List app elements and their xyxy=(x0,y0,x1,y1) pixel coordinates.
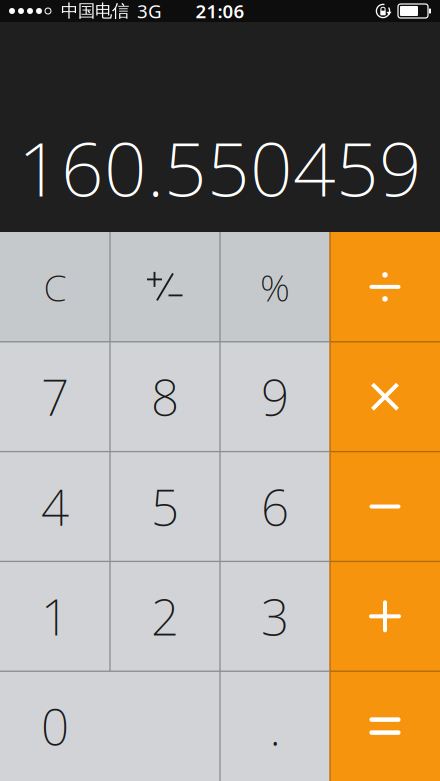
button[interactable]: 6 xyxy=(220,452,330,561)
staticText: % xyxy=(260,262,290,312)
button[interactable]: % xyxy=(220,232,330,342)
staticText: 3G xyxy=(137,0,162,23)
button[interactable]: 9 xyxy=(220,342,330,452)
staticText: 8 xyxy=(151,364,179,429)
button[interactable]: Equals xyxy=(330,671,440,781)
staticText: 7 xyxy=(41,364,69,429)
staticText: 5 xyxy=(151,474,179,539)
staticText: 4 xyxy=(41,474,69,539)
staticText: 6 xyxy=(261,474,289,539)
button[interactable]: Divide xyxy=(330,232,440,342)
staticText: 9 xyxy=(261,364,289,429)
button[interactable]: Multiply xyxy=(330,342,440,452)
button[interactable]: 0 xyxy=(0,671,220,781)
staticText: 1 xyxy=(41,583,69,649)
staticText: 21:06 xyxy=(195,0,244,23)
staticText: 3 xyxy=(261,583,289,649)
staticText: 160.550459 xyxy=(18,118,422,217)
button[interactable]: . xyxy=(220,671,330,781)
button[interactable]: Plus xyxy=(330,561,440,671)
staticText: 2 xyxy=(151,583,179,649)
button[interactable]: 2 xyxy=(110,561,220,671)
button[interactable]: 1 xyxy=(0,561,110,671)
staticText: C xyxy=(43,262,66,312)
button[interactable]: 4 xyxy=(0,452,110,561)
staticText: . xyxy=(269,693,280,759)
button[interactable]: C xyxy=(0,232,110,342)
button[interactable]: Plus Minus xyxy=(110,232,220,342)
button[interactable]: 7 xyxy=(0,342,110,452)
staticText: 中国电信 xyxy=(61,0,129,22)
button[interactable]: 5 xyxy=(110,452,220,561)
staticText: 0 xyxy=(41,693,69,759)
button[interactable]: 3 xyxy=(220,561,330,671)
button[interactable]: Minus xyxy=(330,452,440,561)
button[interactable]: 8 xyxy=(110,342,220,452)
